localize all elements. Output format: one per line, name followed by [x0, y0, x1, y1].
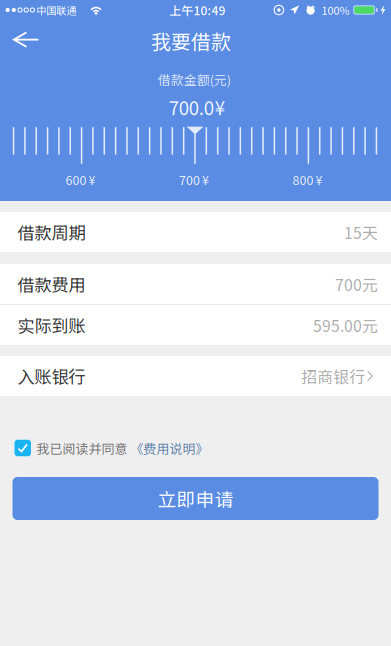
staticText: 借款金额(元) [158, 70, 231, 89]
staticText: 借款周期 [17, 220, 85, 244]
staticText: 15天 [344, 221, 378, 243]
button[interactable]: 借款周期 [0, 212, 391, 252]
staticText: 我已阅读并同意 [36, 439, 127, 457]
staticText: 上午10:49 [169, 1, 225, 19]
staticText: 700 ¥ [179, 171, 209, 189]
button[interactable]: Back [3, 23, 49, 57]
staticText: 招商银行 [301, 365, 365, 387]
staticText: 立即申请 [157, 485, 233, 512]
button[interactable]: 立即申请 [12, 477, 378, 520]
button[interactable]: 借款费用 [0, 264, 391, 304]
staticText: 中国联通 [36, 3, 76, 17]
button[interactable]: 实际到账 [0, 305, 391, 345]
staticText: 700元 [335, 273, 378, 295]
staticText: 借款费用 [17, 272, 85, 296]
button[interactable]: 入账银行 [0, 356, 391, 396]
staticText: 入账银行 [17, 364, 85, 388]
staticText: 600 ¥ [65, 171, 95, 189]
staticText: 700.0 ¥ [169, 94, 225, 121]
staticText: 《费用说明》 [130, 439, 208, 457]
staticText: 100% [321, 2, 349, 18]
staticText: 595.00元 [313, 314, 378, 336]
staticText: 我要借款 [151, 26, 231, 55]
staticText: 800 ¥ [292, 171, 322, 189]
button[interactable]: 我已阅读并同意 [0, 422, 391, 474]
staticText: 实际到账 [17, 313, 85, 337]
